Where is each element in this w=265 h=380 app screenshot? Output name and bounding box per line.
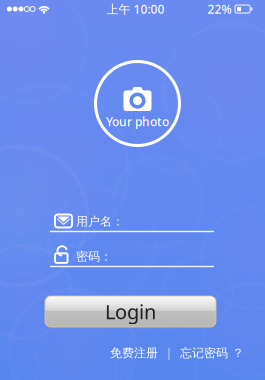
staticText: 用户名： — [76, 214, 124, 229]
staticText: 22% — [208, 1, 232, 17]
staticText: 上午 10:00 — [106, 1, 164, 17]
staticText: 密码： — [76, 249, 112, 264]
button[interactable]: Login — [45, 296, 216, 327]
button[interactable]: 免费注册 — [110, 346, 158, 360]
button[interactable]: 忘记密码 ？ — [180, 346, 244, 360]
staticText: 忘记密码 ？ — [180, 346, 244, 360]
staticText: Your photo — [106, 113, 169, 129]
staticText: 免费注册 — [110, 346, 158, 360]
staticText: ｜ — [163, 346, 175, 360]
staticText: Login — [105, 298, 156, 325]
button[interactable]: Your photo — [94, 60, 180, 146]
